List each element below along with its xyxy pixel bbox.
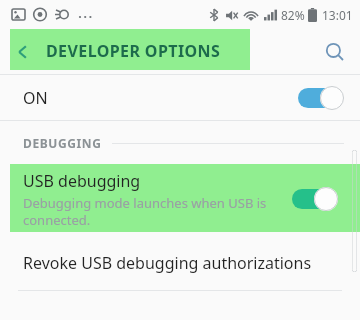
button[interactable]: Back [0,29,46,74]
staticText: 82% [281,7,305,23]
staticText: Revoke USB debugging authorizations [23,252,312,274]
button[interactable]: USB debugging [0,164,360,234]
staticText: ON [23,87,48,109]
staticText: USB debugging [23,170,141,192]
staticText: Debugging mode launches when USB is conn… [23,194,280,229]
staticText: DEBUGGING [23,135,102,151]
button[interactable]: Search [310,29,360,74]
staticText: 13:01 [322,7,353,23]
staticText: DEVELOPER OPTIONS [46,40,221,62]
button[interactable]: ON [0,75,360,120]
button[interactable]: Revoke USB debugging authorizations [0,234,360,291]
